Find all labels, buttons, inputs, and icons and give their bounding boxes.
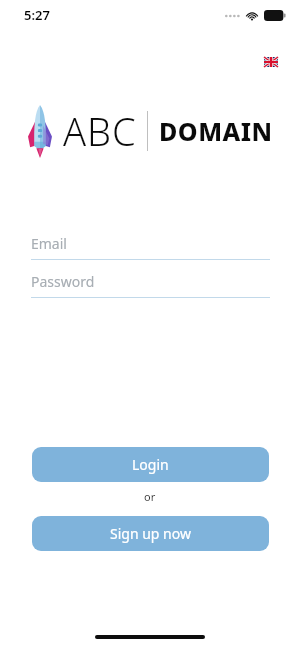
staticText: ABC: [63, 105, 137, 157]
staticText: Login: [132, 455, 169, 474]
button[interactable]: Sign up now: [32, 516, 269, 551]
button[interactable]: Login: [32, 447, 269, 482]
staticText: Password: [31, 272, 95, 291]
button[interactable]: Email: [31, 232, 270, 260]
staticText: Email: [31, 234, 67, 253]
staticText: Sign up now: [110, 524, 191, 543]
button[interactable]: Language: English: [264, 57, 278, 67]
staticText: 5:27: [24, 6, 50, 24]
button[interactable]: Password: [31, 270, 270, 298]
staticText: or: [144, 489, 156, 504]
staticText: DOMAIN: [159, 114, 273, 148]
